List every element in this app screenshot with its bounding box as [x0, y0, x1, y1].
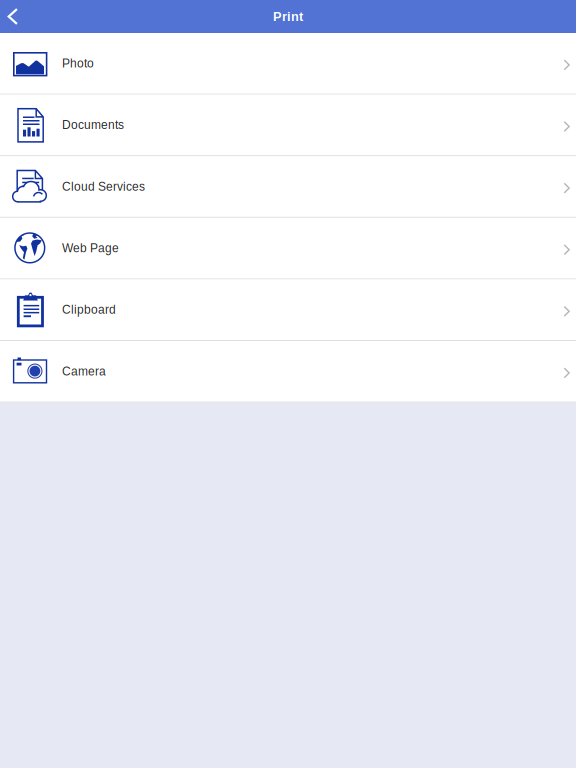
- staticText: Photo: [62, 57, 94, 70]
- button[interactable]: Documents: [0, 95, 576, 156]
- button[interactable]: Photo: [0, 33, 576, 95]
- button[interactable]: Cloud Services: [0, 156, 576, 218]
- staticText: Clipboard: [62, 303, 116, 316]
- button[interactable]: Camera: [0, 341, 576, 403]
- staticText: Camera: [62, 365, 106, 378]
- button[interactable]: Clipboard: [0, 279, 576, 341]
- staticText: Documents: [62, 118, 124, 132]
- button[interactable]: Web Page: [0, 218, 576, 279]
- staticText: Print: [273, 9, 303, 24]
- staticText: Cloud Services: [62, 180, 145, 193]
- button[interactable]: Back: [0, 0, 35, 32]
- staticText: Web Page: [62, 241, 119, 255]
